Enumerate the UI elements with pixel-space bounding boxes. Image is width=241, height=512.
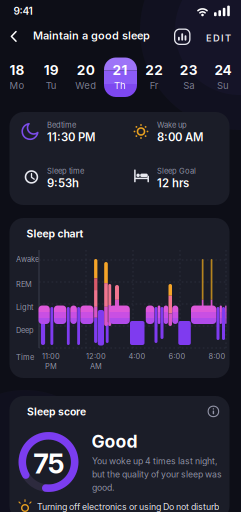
staticText: 12 hrs — [157, 176, 189, 190]
staticText: Deep — [16, 326, 34, 335]
staticText: Wake up — [157, 120, 187, 129]
staticText: 4:00 — [128, 352, 145, 361]
button[interactable]: 18 — [0, 62, 34, 91]
button[interactable] — [208, 406, 219, 417]
staticText: Sleep chart — [26, 227, 83, 240]
staticText: 23 — [180, 62, 198, 78]
staticText: 75 — [33, 447, 65, 480]
staticText: Awake — [16, 255, 39, 264]
staticText: 9:41 — [13, 5, 32, 17]
staticText: 11:00 — [42, 352, 60, 361]
staticText: Tu — [46, 80, 57, 91]
staticText: Sleep time — [47, 166, 84, 175]
staticText: 6:00 — [168, 352, 185, 361]
button[interactable]: 22 — [137, 62, 171, 91]
button[interactable]: 24 — [206, 62, 240, 91]
staticText: 19 — [44, 62, 59, 78]
staticText: Maintain a good sleep — [33, 29, 150, 42]
staticText: PM — [45, 362, 57, 371]
staticText: Sa — [183, 80, 194, 91]
staticText: EDIT — [206, 32, 231, 43]
button[interactable]: EDIT — [206, 32, 231, 43]
staticText: Sleep score — [27, 405, 86, 418]
button[interactable]: 23 — [172, 62, 206, 91]
staticText: 8:00 AM — [157, 130, 203, 144]
button[interactable] — [104, 57, 137, 97]
staticText: Su — [217, 80, 229, 91]
button[interactable]: 21 — [103, 62, 137, 91]
staticText: 21 — [112, 62, 127, 78]
button[interactable]: 20 — [69, 62, 103, 91]
staticText: 11:30 PM — [47, 130, 95, 144]
staticText: 24 — [214, 62, 231, 78]
staticText: 9:53h — [47, 176, 79, 190]
staticText: Bedtime — [47, 120, 76, 129]
staticText: Light — [16, 303, 33, 312]
staticText: 22 — [145, 62, 163, 78]
staticText: AM — [90, 362, 102, 371]
staticText: Fr — [150, 80, 159, 91]
staticText: Turning off electronics or using Do not … — [37, 501, 219, 512]
button[interactable] — [7, 30, 21, 43]
staticText: 12:00 — [86, 352, 106, 361]
staticText: Th — [114, 80, 126, 91]
staticText: 18 — [9, 62, 24, 78]
staticText: Mo — [9, 80, 24, 91]
staticText: You woke up 4 times last night, but the … — [92, 456, 222, 493]
staticText: Sleep Goal — [157, 166, 196, 175]
button[interactable] — [174, 28, 190, 45]
button[interactable]: 19 — [34, 62, 68, 91]
staticText: 8:00 — [208, 352, 225, 361]
staticText: Wed — [75, 80, 96, 91]
staticText: 20 — [77, 62, 95, 78]
staticText: Good — [91, 431, 137, 452]
staticText: REM — [16, 280, 32, 289]
staticText: Time — [16, 353, 34, 362]
